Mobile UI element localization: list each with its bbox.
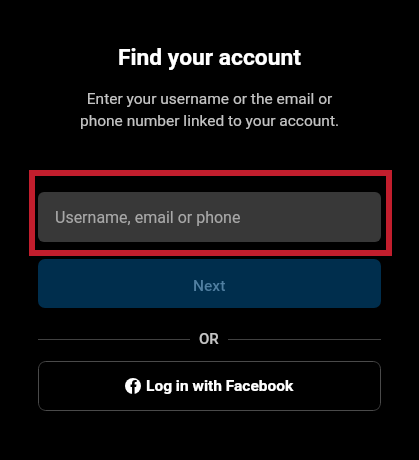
other: Facebook logo: [125, 378, 141, 394]
staticText: Next: [193, 277, 226, 295]
staticText: Find your account: [0, 44, 419, 71]
staticText: OR: [199, 330, 219, 348]
staticText: Log in with Facebook: [146, 377, 294, 395]
staticText: Username, email or phone: [55, 208, 241, 227]
button[interactable]: Facebook logo: [38, 361, 381, 411]
button[interactable]: Next: [38, 259, 381, 308]
staticText: Enter your username or the email or phon…: [0, 90, 419, 129]
button[interactable]: Username, email or phone: [38, 192, 381, 242]
